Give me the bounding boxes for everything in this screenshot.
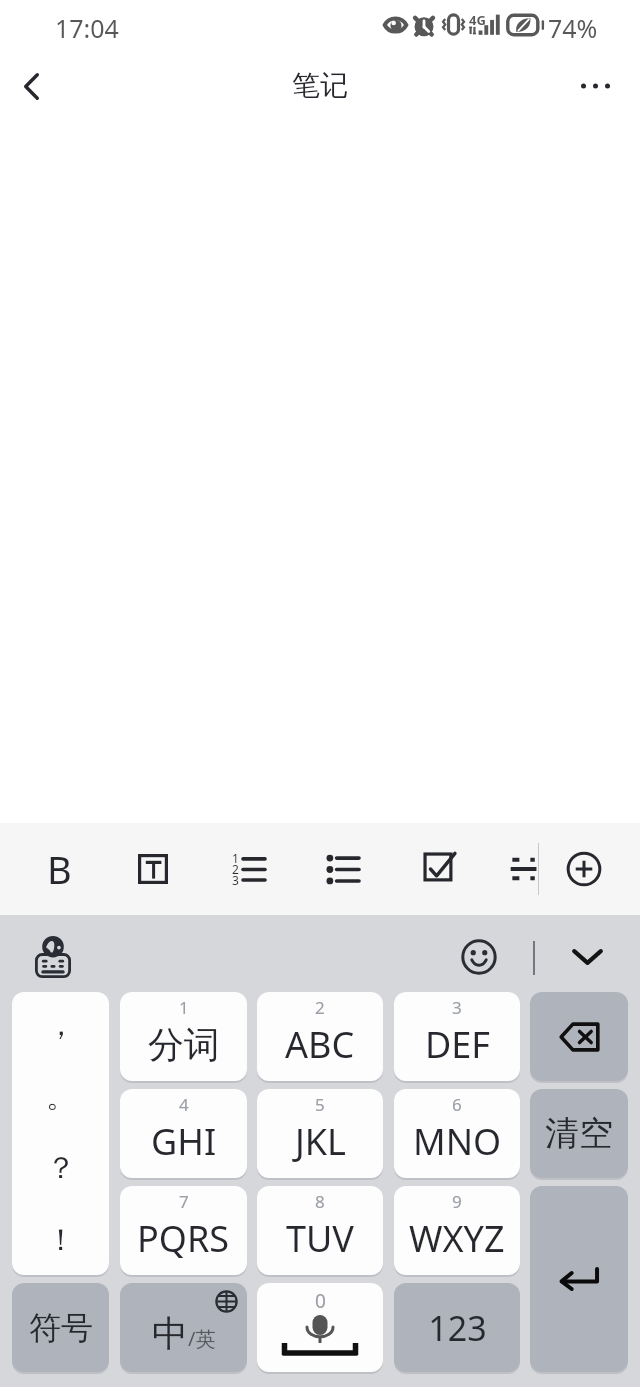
staticText: 清空 [545,1112,613,1155]
staticText: 中 [152,1311,188,1356]
staticText: 9 [452,1190,462,1213]
staticText: 8 [315,1190,325,1213]
button[interactable]: Checklist [408,829,472,909]
staticText: 123 [428,1305,487,1351]
button[interactable]: Bold [27,829,91,909]
button[interactable]: Add [552,829,616,909]
staticText: 符号 [29,1308,93,1348]
button[interactable]: ， [12,992,109,1275]
staticText: DEF [425,1020,490,1069]
staticText: 4G [469,11,486,29]
button[interactable]: Enter [530,1186,628,1372]
staticText: ！ [46,1221,76,1259]
staticText: PQRS [137,1214,230,1263]
button[interactable]: 123 [394,1283,520,1372]
staticText: 1 [232,850,239,866]
staticText: /英 [188,1325,216,1352]
button[interactable]: 符号 [12,1283,109,1372]
button[interactable]: Switch input language [23,927,83,987]
staticText: 分词 [148,1022,220,1067]
button[interactable]: 中 [120,1283,247,1372]
staticText: MNO [413,1117,502,1166]
button[interactable]: 3 [394,992,520,1081]
staticText: ABC [285,1020,355,1069]
button[interactable]: Backspace [530,992,628,1081]
staticText: 7 [179,1190,189,1213]
staticText: 2 [232,861,239,877]
staticText: 2 [315,996,325,1019]
button[interactable]: More options [565,56,625,116]
staticText: 5 [315,1093,325,1116]
staticText: 4 [179,1093,189,1116]
button[interactable]: 0 [257,1283,383,1372]
staticText: 74% [548,11,598,45]
button[interactable]: 9 [394,1186,520,1275]
button[interactable]: 4 [120,1089,247,1178]
staticText: ？ [46,1149,76,1187]
button[interactable]: Emoji [449,927,509,987]
staticText: TUV [286,1214,354,1263]
button[interactable]: Numbered list [216,829,280,909]
staticText: WXYZ [409,1214,505,1263]
button[interactable]: Text style [121,829,185,909]
staticText: JKL [295,1117,346,1166]
staticText: 17:04 [55,11,119,45]
button[interactable]: Divider [491,829,555,909]
button[interactable]: 清空 [530,1089,628,1178]
button[interactable]: Back [1,56,61,116]
button[interactable]: 2 [257,992,383,1081]
button[interactable]: Bullet list [311,829,375,909]
staticText: GHI [151,1117,217,1166]
staticText: 。 [46,1078,76,1116]
staticText: 0 [315,1288,326,1314]
button[interactable]: Hide keyboard [557,927,617,987]
staticText: 3 [452,996,462,1019]
button[interactable]: 6 [394,1089,520,1178]
staticText: 笔记 [292,68,348,103]
button[interactable]: 7 [120,1186,247,1275]
staticText: ， [46,1006,76,1044]
staticText: 3 [232,872,239,888]
staticText: 6 [452,1093,462,1116]
button[interactable]: 1 [120,992,247,1081]
staticText: 1 [179,996,189,1019]
button[interactable]: 8 [257,1186,383,1275]
button[interactable]: 5 [257,1089,383,1178]
staticText: B [47,843,72,895]
